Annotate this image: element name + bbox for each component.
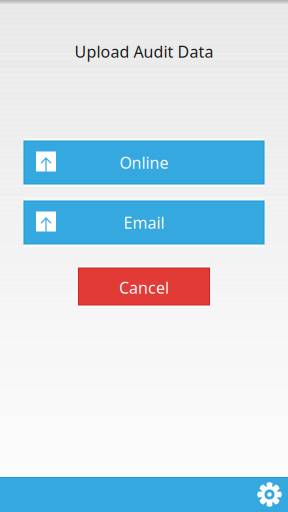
staticText: Email	[123, 212, 164, 233]
button[interactable]: Cancel	[78, 265, 209, 307]
button[interactable]: Settings	[0, 477, 288, 512]
staticText: Upload Audit Data	[74, 41, 213, 62]
button[interactable]: Online	[24, 138, 264, 186]
staticText: Online	[119, 152, 168, 173]
button[interactable]: Email	[24, 198, 264, 246]
staticText: Cancel	[119, 277, 169, 298]
